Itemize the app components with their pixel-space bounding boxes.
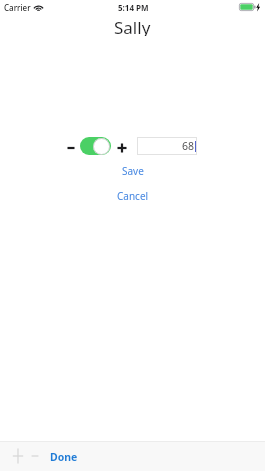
button[interactable]: Cancel bbox=[115, 189, 151, 203]
staticText: Save bbox=[122, 164, 144, 178]
button[interactable]: Add bbox=[10, 447, 26, 465]
button[interactable]: 68 bbox=[137, 137, 197, 155]
staticText: Sally bbox=[114, 16, 151, 36]
button[interactable]: Save bbox=[120, 164, 146, 178]
staticText: Carrier bbox=[4, 2, 31, 13]
staticText: Cancel bbox=[117, 189, 149, 203]
staticText: 5:14 PM bbox=[118, 2, 149, 13]
button[interactable]: Done bbox=[48, 448, 80, 466]
button[interactable]: Toggle bbox=[80, 137, 111, 155]
button[interactable]: Decrease bbox=[64, 140, 78, 156]
button[interactable]: Increase bbox=[115, 140, 129, 156]
staticText: Done bbox=[50, 450, 78, 464]
staticText: 68 bbox=[182, 139, 195, 153]
button[interactable]: Remove bbox=[29, 447, 41, 465]
